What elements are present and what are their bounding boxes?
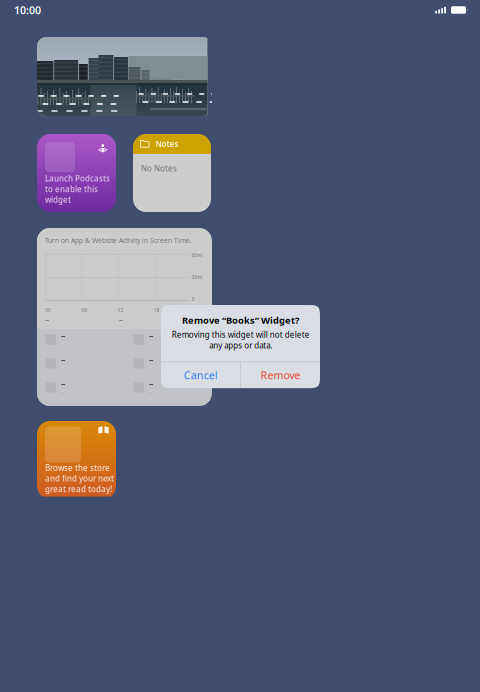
staticText: 10:00: [14, 3, 41, 17]
staticText: --: [149, 379, 153, 388]
staticText: 00: [45, 306, 51, 313]
staticText: 12: [117, 306, 123, 313]
staticText: Remove: [260, 368, 300, 382]
staticText: --: [119, 315, 123, 324]
staticText: --: [61, 355, 65, 364]
staticText: 0: [191, 295, 194, 302]
staticText: --: [61, 379, 65, 388]
staticText: --: [61, 389, 65, 396]
staticText: Remove “Books” Widget?: [182, 314, 299, 326]
staticText: --: [61, 331, 65, 340]
staticText: Turn on App & Website Activity in Screen…: [45, 236, 192, 245]
staticText: Removing this widget will not delete any…: [171, 329, 309, 351]
staticText: --: [45, 315, 49, 324]
staticText: 60m: [191, 251, 202, 258]
staticText: Browse the store and find your next grea…: [45, 463, 114, 494]
button[interactable]: Cancel: [161, 362, 240, 388]
staticText: --: [149, 331, 153, 340]
staticText: Cancel: [184, 368, 218, 382]
staticText: Notes: [155, 139, 178, 149]
staticText: 06: [81, 306, 87, 313]
staticText: --: [149, 355, 153, 364]
staticText: 30m: [191, 273, 202, 280]
staticText: 18: [154, 306, 160, 313]
button[interactable]: Remove: [241, 362, 320, 388]
staticText: No Notes: [141, 163, 177, 174]
staticText: Launch Podcasts to enable this widget: [45, 173, 110, 205]
staticText: --: [149, 389, 153, 396]
